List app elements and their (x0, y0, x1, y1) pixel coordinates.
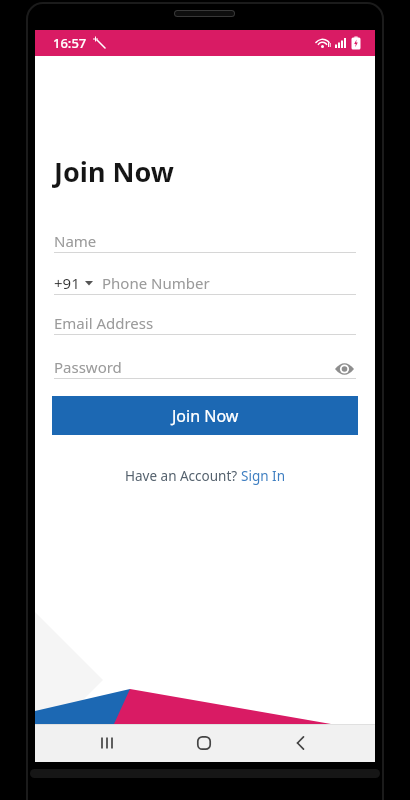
button[interactable] (296, 736, 305, 750)
staticText: Password (54, 357, 122, 377)
button[interactable]: Password (54, 357, 356, 379)
staticText: +91 (54, 273, 80, 293)
staticText: Phone Number (102, 273, 210, 293)
button[interactable]: Name (54, 231, 356, 253)
button[interactable]: Email Address (54, 313, 356, 335)
staticText: Join Now (54, 153, 174, 190)
button[interactable] (85, 280, 94, 286)
button[interactable] (335, 362, 354, 376)
staticText: Name (54, 231, 97, 251)
staticText: Have an Account? (125, 467, 241, 485)
button[interactable] (101, 737, 114, 749)
button[interactable] (197, 736, 211, 750)
staticText: 16:57 (53, 34, 87, 52)
staticText: Email Address (54, 313, 154, 333)
button[interactable]: Join Now (52, 396, 358, 435)
button[interactable]: +91 (54, 273, 356, 295)
staticText: Join Now (172, 405, 239, 427)
button[interactable]: Sign In (241, 467, 285, 485)
